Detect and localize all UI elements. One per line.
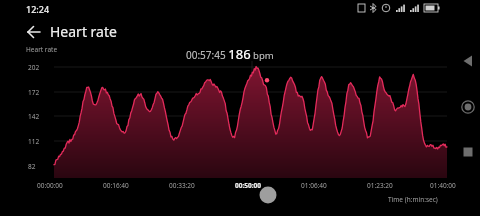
staticText: 112 — [28, 137, 40, 146]
staticText: 82 — [28, 162, 36, 171]
staticText: 01:06:40 — [301, 181, 327, 190]
button[interactable]: Back — [456, 49, 480, 73]
staticText: 00:50:00 — [235, 181, 261, 190]
staticText: 00:16:40 — [103, 181, 129, 190]
staticText: 172 — [28, 88, 40, 97]
button[interactable] — [0, 0, 480, 216]
staticText: 01:23:20 — [367, 181, 393, 190]
staticText: 12:24 — [26, 3, 50, 15]
staticText: Time (h:min:sec) — [388, 195, 438, 204]
staticText: 202 — [28, 63, 40, 72]
staticText: 00:00:00 — [37, 181, 63, 190]
button[interactable]: Recent apps — [456, 140, 480, 164]
staticText: 01:40:00 — [430, 181, 456, 190]
staticText: Heart rate — [50, 22, 117, 41]
staticText: 142 — [28, 112, 40, 121]
button[interactable]: Home — [456, 95, 480, 119]
staticText: 00:57:45 186 bpm — [186, 45, 274, 63]
staticText: Heart rate — [26, 45, 58, 54]
button[interactable]: Back — [22, 20, 46, 44]
staticText: 00:33:20 — [169, 181, 195, 190]
